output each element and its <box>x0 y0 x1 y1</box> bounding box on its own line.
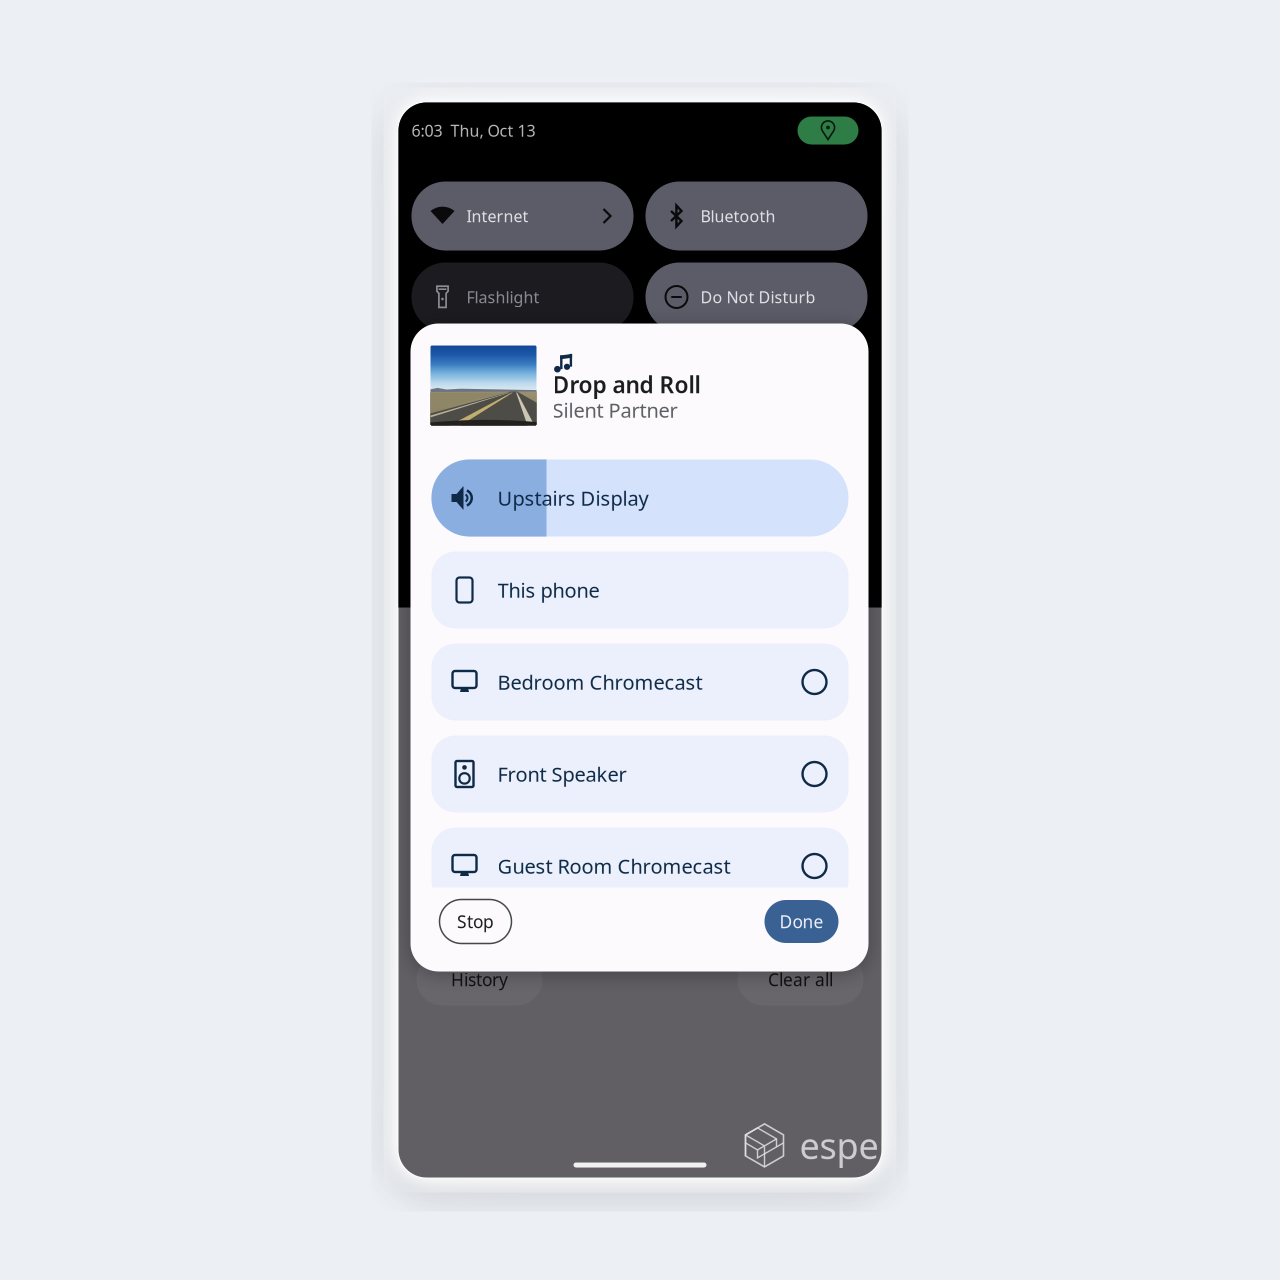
button[interactable]: Done <box>764 900 838 943</box>
staticText: esper <box>799 1121 893 1169</box>
button[interactable]: This phone <box>431 551 848 628</box>
button[interactable]: Internet <box>411 181 633 250</box>
staticText: 6:03 Thu, Oct 13 <box>411 120 535 141</box>
button[interactable]: Do Not Disturb <box>645 262 867 331</box>
staticText: Upstairs Display <box>497 485 648 511</box>
button[interactable]: Clear all <box>737 953 863 1005</box>
button[interactable]: Bedroom Chromecast <box>431 643 848 720</box>
staticText: Silent Partner <box>552 397 677 423</box>
staticText: Bluetooth <box>700 205 775 227</box>
button[interactable]: Guest Room Chromecast <box>431 827 848 904</box>
button[interactable]: Flashlight <box>411 262 633 331</box>
staticText: Stop <box>457 910 494 933</box>
staticText: Internet <box>466 205 528 227</box>
staticText: Guest Room Chromecast <box>497 853 730 879</box>
button[interactable]: Front Speaker <box>431 735 848 812</box>
staticText: History <box>451 968 508 991</box>
staticText: Flashlight <box>466 286 539 308</box>
button[interactable]: Bluetooth <box>645 181 867 250</box>
button[interactable]: Stop <box>439 899 511 943</box>
staticText: Clear all <box>768 968 833 991</box>
button[interactable]: History <box>416 953 542 1005</box>
staticText: Done <box>779 910 823 933</box>
button[interactable]: Upstairs Display <box>431 459 848 536</box>
staticText: Front Speaker <box>497 761 626 787</box>
staticText: Drop and Roll <box>552 369 700 400</box>
staticText: Bedroom Chromecast <box>497 669 702 695</box>
staticText: Do Not Disturb <box>700 286 815 308</box>
button[interactable]: Location in use <box>797 116 858 144</box>
staticText: This phone <box>497 577 599 603</box>
